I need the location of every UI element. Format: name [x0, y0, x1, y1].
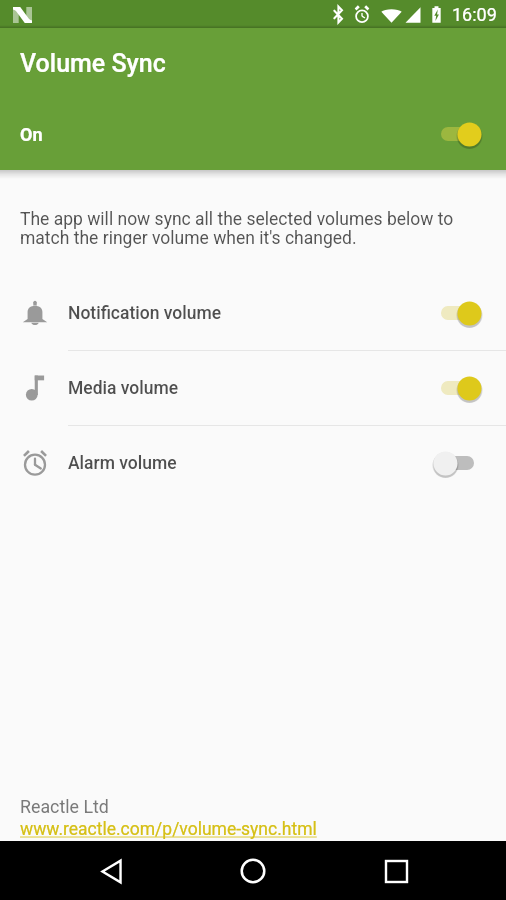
staticText: 16:09 [452, 4, 497, 25]
button[interactable]: Media volume [0, 351, 506, 425]
staticText: Alarm volume [68, 453, 177, 474]
button[interactable]: Notification volume [0, 276, 506, 350]
button[interactable]: Back [87, 847, 135, 895]
button[interactable]: Recents [372, 847, 420, 895]
staticText: The app will now sync all the selected v… [20, 209, 458, 248]
staticText: On [20, 124, 43, 145]
staticText: Notification volume [68, 303, 222, 324]
button[interactable]: Home [229, 847, 277, 895]
staticText: Volume Sync [20, 49, 166, 78]
staticText: Media volume [68, 378, 179, 399]
button[interactable]: www.reactle.com/p/volume-sync.html [20, 819, 317, 840]
button[interactable]: On [0, 106, 506, 162]
staticText: Reactle Ltd [20, 796, 109, 817]
button[interactable]: Alarm volume [0, 426, 506, 500]
